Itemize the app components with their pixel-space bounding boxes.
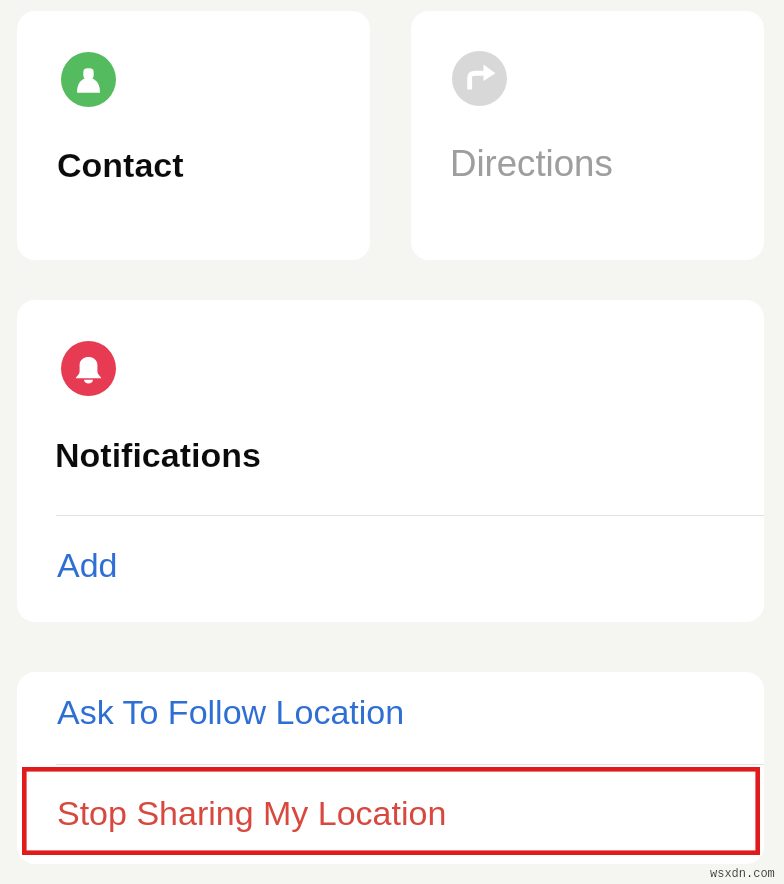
staticText: Contact [57, 146, 184, 184]
button[interactable]: Directions icon [411, 11, 764, 260]
button[interactable]: Add [17, 516, 764, 622]
button[interactable]: Stop Sharing My Location [17, 765, 764, 864]
staticText: Notifications [55, 436, 261, 474]
staticText: Ask To Follow Location [57, 693, 405, 731]
button[interactable]: Notifications bell [17, 300, 764, 515]
staticText: Add [57, 546, 118, 584]
button[interactable]: Contact avatar [17, 11, 370, 260]
staticText: Directions [450, 143, 613, 184]
button[interactable]: Ask To Follow Location [17, 672, 764, 765]
other: Notifications bell [61, 341, 116, 396]
staticText: Stop Sharing My Location [57, 794, 447, 832]
staticText: wsxdn.com [710, 867, 775, 881]
other: Directions icon [452, 51, 507, 106]
other: Contact avatar [61, 52, 116, 107]
